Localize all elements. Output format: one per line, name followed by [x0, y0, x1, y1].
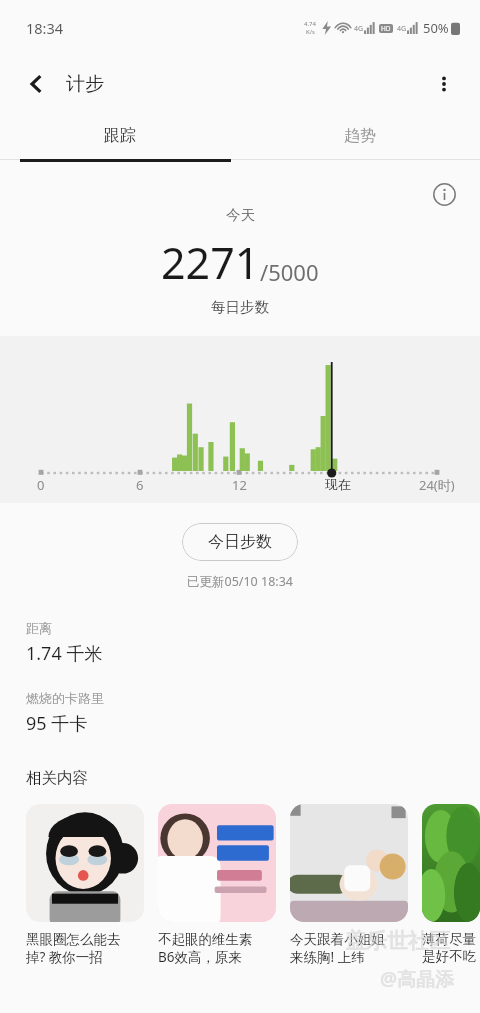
- button[interactable]: 今日步数: [182, 523, 298, 561]
- staticText: 今天: [226, 206, 255, 224]
- button[interactable]: Information: [427, 177, 461, 211]
- staticText: 95 千卡: [26, 711, 88, 736]
- staticText: 薄荷尽量: [422, 931, 476, 948]
- staticText: 趋势: [344, 126, 376, 146]
- staticText: 距离: [26, 620, 52, 636]
- staticText: 6: [136, 476, 144, 494]
- staticText: 相关内容: [26, 768, 88, 788]
- button[interactable]: 跟踪: [0, 113, 240, 159]
- staticText: K/s: [306, 28, 315, 36]
- staticText: 1.74 千米: [26, 641, 103, 666]
- staticText: 4.74: [304, 20, 316, 28]
- button[interactable]: 今天跟着小姐姐: [290, 804, 408, 966]
- staticText: 盖乐世社区: [345, 928, 450, 954]
- staticText: 黑眼圈怎么能去: [26, 931, 121, 948]
- staticText: 18:34: [26, 18, 64, 38]
- staticText: B6效高，原来: [158, 948, 242, 966]
- staticText: 是好不吃: [422, 948, 476, 965]
- button[interactable]: 不起眼的维生素: [158, 804, 276, 966]
- staticText: @高晶添: [380, 966, 455, 992]
- button[interactable]: More options: [422, 62, 466, 106]
- staticText: 今天跟着小姐姐: [290, 931, 385, 948]
- staticText: 2271: [161, 233, 260, 292]
- button[interactable]: 黑眼圈怎么能去: [26, 804, 144, 966]
- staticText: 现在: [325, 476, 351, 492]
- staticText: 12: [232, 476, 247, 494]
- button[interactable]: 薄荷尽量: [422, 804, 480, 965]
- staticText: 掉? 教你一招: [26, 948, 103, 966]
- staticText: /5000: [260, 257, 319, 287]
- staticText: 计步: [66, 72, 104, 96]
- button[interactable]: Back: [14, 62, 58, 106]
- staticText: 每日步数: [211, 298, 269, 316]
- staticText: 跟踪: [104, 126, 136, 146]
- staticText: 4G: [397, 24, 407, 34]
- staticText: 0: [37, 476, 45, 494]
- staticText: 已更新05/10 18:34: [0, 573, 480, 590]
- staticText: 来练胸! 上纬: [290, 948, 365, 966]
- staticText: 24(时): [419, 476, 455, 494]
- staticText: 不起眼的维生素: [158, 931, 253, 948]
- button[interactable]: 距离: [0, 620, 480, 666]
- staticText: 今日步数: [208, 532, 272, 552]
- button[interactable]: 燃烧的卡路里: [0, 690, 480, 736]
- button[interactable]: 趋势: [240, 113, 480, 159]
- staticText: 燃烧的卡路里: [26, 690, 104, 706]
- staticText: 50%: [423, 19, 449, 37]
- staticText: HD: [381, 24, 391, 33]
- staticText: 4G: [354, 24, 364, 34]
